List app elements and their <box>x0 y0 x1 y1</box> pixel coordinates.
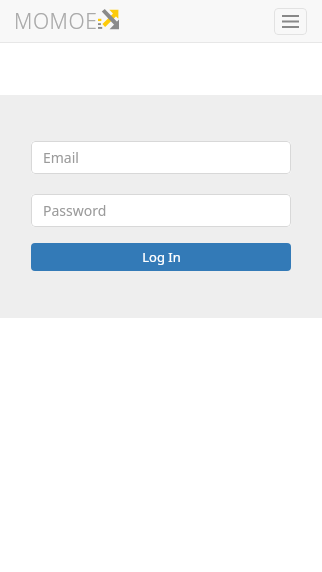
button[interactable]: Log In <box>31 243 291 271</box>
staticText: Email <box>43 148 79 167</box>
button[interactable]: Password <box>31 194 291 227</box>
staticText: MOMOE <box>14 7 98 36</box>
button[interactable]: MOMOE <box>14 7 119 36</box>
button[interactable]: Open navigation menu <box>274 8 307 35</box>
staticText: Password <box>43 201 107 220</box>
button[interactable]: Email <box>31 141 291 174</box>
staticText: Log In <box>142 248 181 266</box>
